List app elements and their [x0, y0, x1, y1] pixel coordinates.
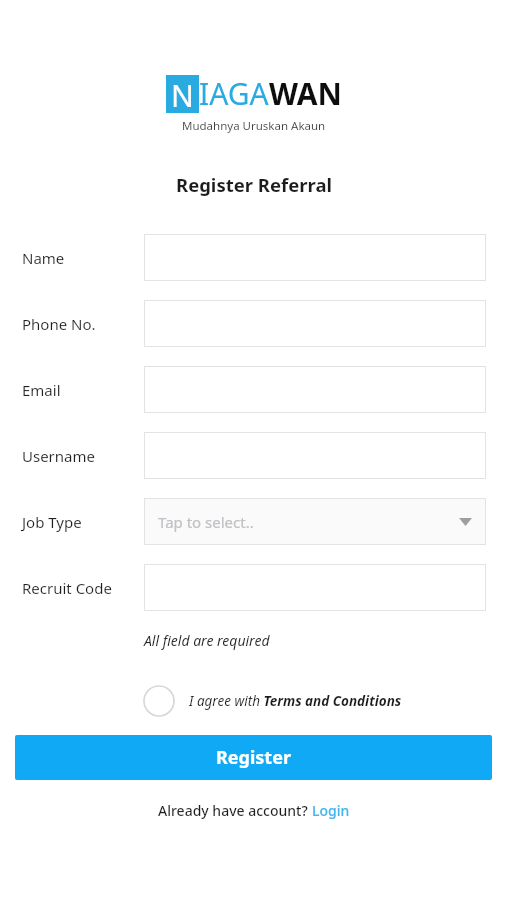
- staticText: WAN: [269, 73, 342, 114]
- button[interactable]: Tap to select..: [144, 498, 486, 545]
- staticText: Login: [312, 801, 350, 820]
- staticText: Recruit Code: [22, 578, 112, 598]
- staticText: Email: [22, 380, 61, 400]
- staticText: All field are required: [144, 631, 270, 650]
- staticText: Username: [22, 446, 95, 466]
- button[interactable]: [144, 300, 486, 347]
- button[interactable]: [144, 234, 486, 281]
- staticText: I agree with Terms and Conditions: [189, 692, 402, 710]
- staticText: Register Referral: [176, 172, 332, 197]
- staticText: Already have account?: [158, 801, 312, 820]
- staticText: Tap to select..: [158, 512, 459, 532]
- staticText: Phone No.: [22, 314, 96, 334]
- other: Agree to Terms and Conditions: [143, 685, 175, 717]
- button[interactable]: [144, 432, 486, 479]
- staticText: Name: [22, 248, 65, 268]
- button[interactable]: Agree to Terms and Conditions: [143, 684, 402, 718]
- staticText: IAGA: [199, 73, 269, 114]
- button[interactable]: [144, 366, 486, 413]
- button[interactable]: Register: [15, 735, 492, 780]
- staticText: Register: [216, 745, 291, 770]
- staticText: Job Type: [22, 512, 82, 532]
- staticText: Mudahnya Uruskan Akaun: [182, 118, 326, 134]
- staticText: N: [171, 75, 194, 113]
- button[interactable]: Login: [312, 801, 350, 820]
- button[interactable]: [144, 564, 486, 611]
